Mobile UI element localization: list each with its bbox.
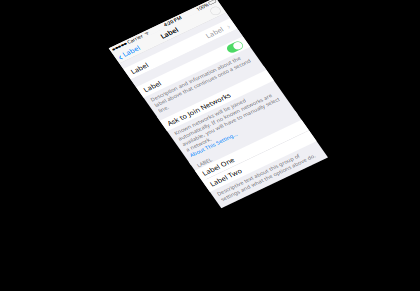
staticText: Label xyxy=(279,93,337,123)
button[interactable]: Label xyxy=(0,86,375,130)
staticText: 4:20 PM xyxy=(188,0,248,21)
staticText: Label xyxy=(158,27,216,57)
